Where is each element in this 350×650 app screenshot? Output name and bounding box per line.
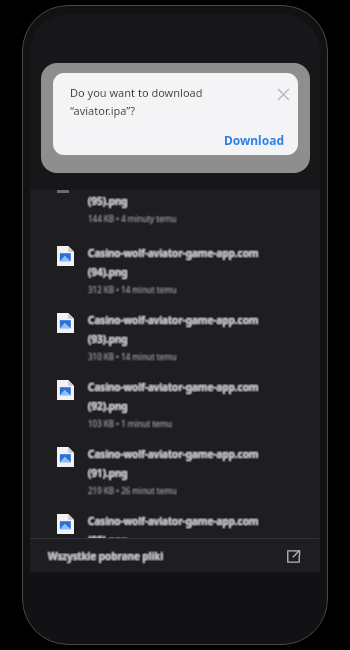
staticText: Casino-wolf-aviator-game-app.com — [87, 245, 258, 259]
staticText: (92).png — [87, 400, 127, 414]
staticText: 310 KB • 14 minut temu — [88, 350, 177, 361]
staticText: 312 KB • 14 minut temu — [88, 284, 177, 295]
staticText: 103 KB • 1 minut temu — [87, 417, 172, 428]
staticText: 103 KB • 1 minut temu — [88, 419, 173, 430]
button[interactable]: Casino-wolf-aviator-game-app.com — [30, 372, 320, 439]
staticText: 144 KB • 4 minuty temu — [87, 212, 176, 223]
staticText: (90).png — [87, 532, 127, 545]
staticText: (92).png — [88, 399, 128, 413]
staticText: 310 KB • 14 minut temu — [87, 350, 176, 361]
button[interactable]: Zamknij — [272, 83, 294, 105]
staticText: Wszystkie pobrane pliki — [47, 550, 162, 564]
staticText: 310 KB • 14 minut temu — [89, 352, 178, 363]
staticText: (94).png — [89, 264, 129, 278]
staticText: (91).png — [87, 467, 127, 481]
staticText: (93).png — [88, 331, 128, 345]
staticText: Casino-wolf-aviator-game-app.com — [87, 448, 258, 462]
staticText: Casino-wolf-aviator-game-app.com — [87, 381, 258, 395]
staticText: 144 KB • 4 minuty temu — [88, 214, 177, 225]
staticText: (95).png — [88, 194, 128, 208]
other: Otwórz wszystkie pobrane pliki — [282, 545, 304, 567]
staticText: (90).png — [89, 534, 129, 547]
staticText: 219 KB • 26 minut temu — [89, 485, 178, 496]
staticText: (95).png — [89, 193, 129, 207]
staticText: Casino-wolf-aviator-game-app.com — [88, 247, 259, 261]
staticText: (95).png — [87, 195, 127, 209]
staticText: 219 KB • 26 minut temu — [87, 484, 176, 495]
staticText: Casino-wolf-aviator-game-app.com — [89, 515, 260, 529]
button[interactable]: Casino-wolf-aviator-game-app.com — [30, 506, 320, 546]
staticText: (93).png — [87, 332, 127, 346]
staticText: (93).png — [87, 333, 127, 347]
staticText: Casino-wolf-aviator-game-app.com — [87, 314, 258, 328]
staticText: Wszystkie pobrane pliki — [49, 550, 164, 564]
staticText: Casino-wolf-aviator-game-app.com — [87, 313, 258, 327]
staticText: 103 KB • 1 minut temu — [88, 418, 173, 429]
staticText: (90).png — [89, 532, 129, 545]
staticText: Casino-wolf-aviator-game-app.com — [89, 448, 260, 462]
staticText: 312 KB • 14 minut temu — [88, 283, 177, 294]
staticText: Download — [224, 132, 284, 148]
button[interactable]: Casino-wolf-aviator-game-app.com — [30, 439, 320, 506]
staticText: 219 KB • 26 minut temu — [87, 486, 176, 497]
staticText: (95).png — [87, 194, 127, 208]
staticText: Casino-wolf-aviator-game-app.com — [88, 379, 259, 393]
button[interactable]: Casino-wolf-aviator-game-app.com — [30, 238, 320, 305]
staticText: (95).png — [89, 195, 129, 209]
staticText: (93).png — [88, 332, 128, 346]
staticText: Casino-wolf-aviator-game-app.com — [88, 447, 259, 461]
staticText: Casino-wolf-aviator-game-app.com — [89, 246, 260, 260]
staticText: (91).png — [87, 465, 127, 479]
staticText: (90).png — [87, 533, 127, 546]
staticText: (92).png — [87, 398, 127, 412]
button[interactable]: Wszystkie pobrane pliki — [30, 539, 320, 572]
staticText: “aviator.ipa”? — [70, 103, 136, 118]
staticText: Casino-wolf-aviator-game-app.com — [87, 246, 258, 260]
staticText: (90).png — [87, 534, 127, 547]
staticText: 310 KB • 14 minut temu — [88, 352, 177, 363]
staticText: Casino-wolf-aviator-game-app.com — [89, 513, 260, 527]
staticText: (92).png — [89, 399, 129, 413]
staticText: Wszystkie pobrane pliki — [49, 548, 164, 562]
staticText: (94).png — [88, 266, 128, 280]
staticText: (90).png — [88, 534, 128, 547]
staticText: Casino-wolf-aviator-game-app.com — [88, 448, 259, 462]
staticText: 310 KB • 14 minut temu — [89, 351, 178, 362]
staticText: Wszystkie pobrane pliki — [48, 549, 163, 563]
staticText: 312 KB • 14 minut temu — [87, 283, 176, 294]
staticText: Casino-wolf-aviator-game-app.com — [87, 514, 258, 528]
button[interactable]: (95).png — [30, 190, 320, 238]
staticText: (91).png — [88, 465, 128, 479]
staticText: 312 KB • 14 minut temu — [89, 284, 178, 295]
staticText: 144 KB • 4 minuty temu — [89, 214, 178, 225]
staticText: (94).png — [88, 264, 128, 278]
staticText: 144 KB • 4 minuty temu — [88, 212, 177, 223]
staticText: 103 KB • 1 minut temu — [89, 418, 174, 429]
staticText: 219 KB • 26 minut temu — [89, 484, 178, 495]
staticText: Casino-wolf-aviator-game-app.com — [89, 312, 260, 326]
staticText: (91).png — [89, 466, 129, 480]
staticText: (92).png — [89, 398, 129, 412]
staticText: (95).png — [89, 194, 129, 208]
staticText: (93).png — [89, 331, 129, 345]
staticText: 312 KB • 14 minut temu — [87, 285, 176, 296]
staticText: (90).png — [89, 533, 129, 546]
staticText: Casino-wolf-aviator-game-app.com — [87, 312, 258, 326]
staticText: (94).png — [87, 264, 127, 278]
staticText: Casino-wolf-aviator-game-app.com — [88, 515, 259, 529]
staticText: Casino-wolf-aviator-game-app.com — [88, 245, 259, 259]
staticText: Casino-wolf-aviator-game-app.com — [89, 247, 260, 261]
staticText: 103 KB • 1 minut temu — [87, 419, 172, 430]
button[interactable]: Casino-wolf-aviator-game-app.com — [30, 305, 320, 372]
staticText: 103 KB • 1 minut temu — [87, 418, 172, 429]
staticText: Casino-wolf-aviator-game-app.com — [87, 446, 258, 460]
staticText: Casino-wolf-aviator-game-app.com — [89, 447, 260, 461]
staticText: 219 KB • 26 minut temu — [88, 486, 177, 497]
staticText: (93).png — [89, 332, 129, 346]
staticText: 103 KB • 1 minut temu — [88, 417, 173, 428]
staticText: (91).png — [87, 466, 127, 480]
staticText: Casino-wolf-aviator-game-app.com — [89, 314, 260, 328]
staticText: Casino-wolf-aviator-game-app.com — [89, 381, 260, 395]
staticText: 310 KB • 14 minut temu — [89, 350, 178, 361]
button[interactable]: Download — [218, 129, 290, 151]
